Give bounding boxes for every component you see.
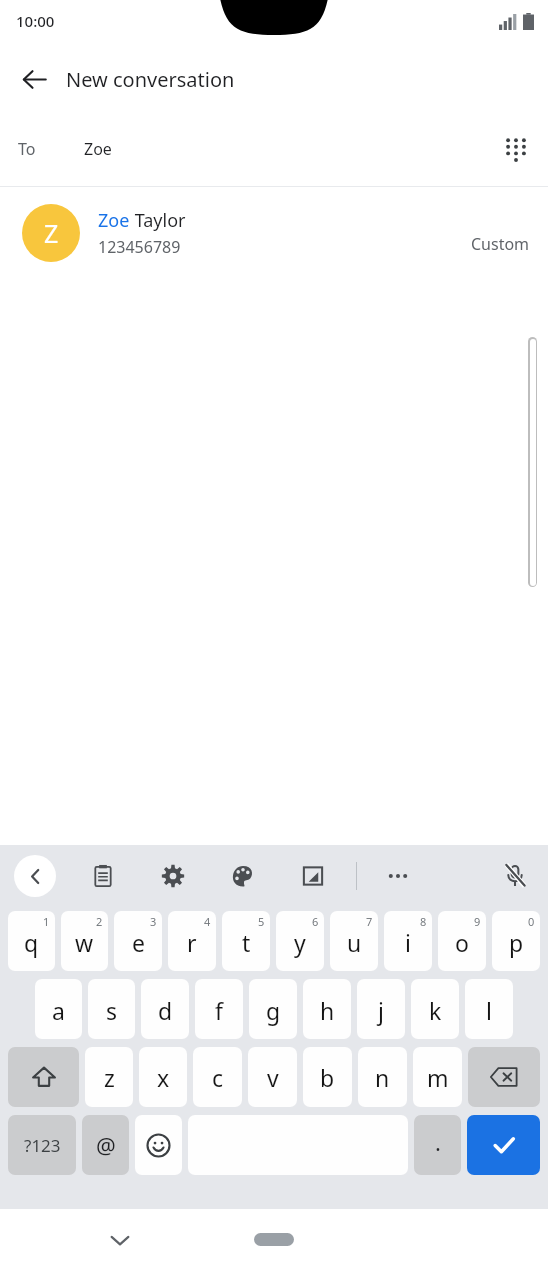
staticText: 0 bbox=[528, 914, 535, 929]
staticText: t bbox=[242, 927, 251, 958]
staticText: o bbox=[455, 927, 469, 958]
staticText: a bbox=[52, 995, 65, 1026]
staticText: c bbox=[212, 1062, 224, 1093]
staticText: 7 bbox=[366, 914, 373, 929]
staticText: 2 bbox=[96, 914, 103, 929]
staticText: Taylor bbox=[130, 208, 186, 233]
staticText: u bbox=[347, 927, 362, 958]
button[interactable]: t bbox=[222, 911, 270, 971]
staticText: 6 bbox=[312, 914, 319, 929]
button[interactable]: b bbox=[303, 1047, 352, 1107]
staticText: h bbox=[320, 995, 335, 1026]
button[interactable]: Settings bbox=[156, 859, 190, 893]
button[interactable]: n bbox=[358, 1047, 407, 1107]
button[interactable]: q bbox=[8, 911, 55, 971]
staticText: y bbox=[294, 927, 306, 958]
staticText: 8 bbox=[420, 914, 427, 929]
button[interactable]: w bbox=[61, 911, 108, 971]
staticText: 3 bbox=[150, 914, 157, 929]
staticText: n bbox=[375, 1062, 390, 1093]
staticText: l bbox=[486, 995, 492, 1026]
staticText: Z bbox=[44, 216, 59, 250]
staticText: 5 bbox=[258, 914, 265, 929]
staticText: v bbox=[267, 1062, 279, 1093]
staticText: 9 bbox=[474, 914, 481, 929]
staticText: 4 bbox=[204, 914, 211, 929]
button[interactable]: z bbox=[85, 1047, 133, 1107]
button[interactable]: Backspace bbox=[468, 1047, 540, 1107]
staticText: Custom bbox=[471, 233, 530, 255]
button[interactable]: k bbox=[411, 979, 459, 1039]
staticText: 123456789 bbox=[98, 236, 181, 258]
button[interactable]: d bbox=[141, 979, 189, 1039]
button[interactable]: i bbox=[384, 911, 432, 971]
button[interactable]: j bbox=[357, 979, 405, 1039]
staticText: b bbox=[320, 1062, 335, 1093]
staticText: k bbox=[429, 995, 442, 1026]
button[interactable]: Home bbox=[254, 1233, 294, 1246]
staticText: e bbox=[132, 927, 145, 958]
staticText: . bbox=[435, 1127, 441, 1157]
staticText: z bbox=[104, 1062, 115, 1093]
button[interactable]: One-handed mode bbox=[296, 859, 330, 893]
button[interactable]: g bbox=[249, 979, 297, 1039]
button[interactable]: o bbox=[438, 911, 486, 971]
staticText: New conversation bbox=[66, 66, 235, 93]
button[interactable]: l bbox=[465, 979, 513, 1039]
staticText: ?123 bbox=[24, 1134, 61, 1157]
staticText: q bbox=[24, 927, 39, 958]
button[interactable]: Z bbox=[0, 187, 548, 279]
staticText: d bbox=[158, 995, 173, 1026]
button[interactable]: Back bbox=[10, 55, 58, 103]
button[interactable]: Hide keyboard bbox=[98, 1218, 142, 1262]
button[interactable]: e bbox=[114, 911, 162, 971]
staticText: i bbox=[405, 927, 411, 958]
button[interactable]: Clipboard bbox=[86, 859, 120, 893]
staticText: 10:00 bbox=[16, 11, 55, 31]
staticText: x bbox=[157, 1062, 170, 1093]
button[interactable]: c bbox=[193, 1047, 242, 1107]
button[interactable]: r bbox=[168, 911, 216, 971]
button[interactable]: v bbox=[248, 1047, 297, 1107]
button[interactable]: Emoji bbox=[135, 1115, 182, 1175]
button[interactable]: ?123 bbox=[8, 1115, 76, 1175]
staticText: m bbox=[427, 1062, 449, 1093]
button[interactable]: h bbox=[303, 979, 351, 1039]
button[interactable]: f bbox=[195, 979, 243, 1039]
button[interactable]: p bbox=[492, 911, 540, 971]
button[interactable]: Themes bbox=[226, 859, 260, 893]
staticText: j bbox=[378, 995, 384, 1026]
staticText: w bbox=[75, 927, 94, 958]
staticText: Zoe bbox=[98, 208, 130, 233]
button[interactable]: y bbox=[276, 911, 324, 971]
button[interactable]: Voice input off bbox=[498, 859, 532, 893]
staticText: r bbox=[187, 927, 197, 958]
button[interactable]: u bbox=[330, 911, 378, 971]
staticText: p bbox=[509, 927, 524, 958]
button[interactable]: . bbox=[414, 1115, 461, 1175]
staticText: 1 bbox=[43, 914, 50, 929]
staticText: s bbox=[106, 995, 118, 1026]
button[interactable]: x bbox=[139, 1047, 187, 1107]
button[interactable]: @ bbox=[82, 1115, 129, 1175]
staticText: g bbox=[266, 995, 281, 1026]
button[interactable]: Done bbox=[467, 1115, 540, 1175]
button[interactable]: More options bbox=[381, 859, 415, 893]
button[interactable]: Dialpad bbox=[492, 125, 540, 173]
staticText: @ bbox=[96, 1130, 116, 1160]
button[interactable]: s bbox=[88, 979, 135, 1039]
staticText: Zoe bbox=[84, 138, 112, 160]
button[interactable]: a bbox=[35, 979, 82, 1039]
staticText: To bbox=[18, 138, 36, 160]
button[interactable]: m bbox=[413, 1047, 462, 1107]
button[interactable]: Shift bbox=[8, 1047, 79, 1107]
staticText: f bbox=[215, 995, 223, 1026]
button[interactable]: Expand toolbar bbox=[14, 855, 56, 897]
